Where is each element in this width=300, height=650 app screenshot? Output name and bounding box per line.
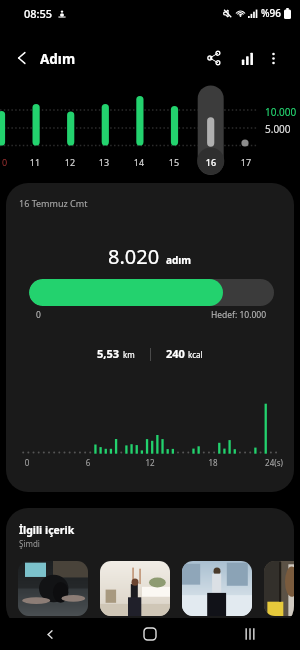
button[interactable]: Recent apps <box>200 618 300 650</box>
staticText: 6 <box>74 457 102 468</box>
staticText: Adım <box>40 50 76 68</box>
staticText: 0 <box>36 309 41 321</box>
button[interactable]: Home <box>100 618 200 650</box>
staticText: 8.020 <box>108 243 160 270</box>
staticText: Hedef: 10.000 <box>198 309 266 321</box>
staticText: 17 <box>236 156 256 168</box>
button[interactable]: Related content item <box>182 561 252 616</box>
staticText: %96 <box>261 6 281 20</box>
staticText: 10 <box>0 156 12 168</box>
button[interactable]: Related content item <box>100 561 170 616</box>
button[interactable]: Statistics <box>230 41 264 75</box>
staticText: 240 <box>166 346 185 361</box>
staticText: 16 <box>201 156 221 168</box>
button[interactable]: Back <box>0 618 100 650</box>
staticText: 10.000 <box>265 105 297 119</box>
staticText: Şimdi <box>19 538 40 549</box>
button[interactable]: Share <box>197 41 231 75</box>
staticText: 12 <box>60 156 80 168</box>
staticText: km <box>123 349 135 360</box>
button[interactable]: More options <box>256 41 290 75</box>
staticText: 12 <box>136 457 164 468</box>
staticText: 08:55 <box>24 6 53 21</box>
staticText: adım <box>166 253 192 267</box>
staticText: 14 <box>129 156 149 168</box>
staticText: İlgili içerik <box>19 523 75 537</box>
button[interactable]: 16 Temmuz Cmt <box>6 183 294 492</box>
staticText: kcal <box>188 349 203 360</box>
staticText: 5,53 <box>97 346 120 361</box>
staticText: 24(s) <box>260 457 288 468</box>
staticText: 13 <box>94 156 114 168</box>
staticText: 0 <box>13 457 41 468</box>
staticText: 5.000 <box>265 122 291 136</box>
staticText: 15 <box>164 156 184 168</box>
staticText: 16 Temmuz Cmt <box>19 197 88 209</box>
staticText: 11 <box>25 156 45 168</box>
button[interactable]: Related content item <box>18 561 88 616</box>
button[interactable]: Related content item <box>264 561 294 616</box>
staticText: 18 <box>199 457 227 468</box>
button[interactable]: Back <box>5 41 39 75</box>
